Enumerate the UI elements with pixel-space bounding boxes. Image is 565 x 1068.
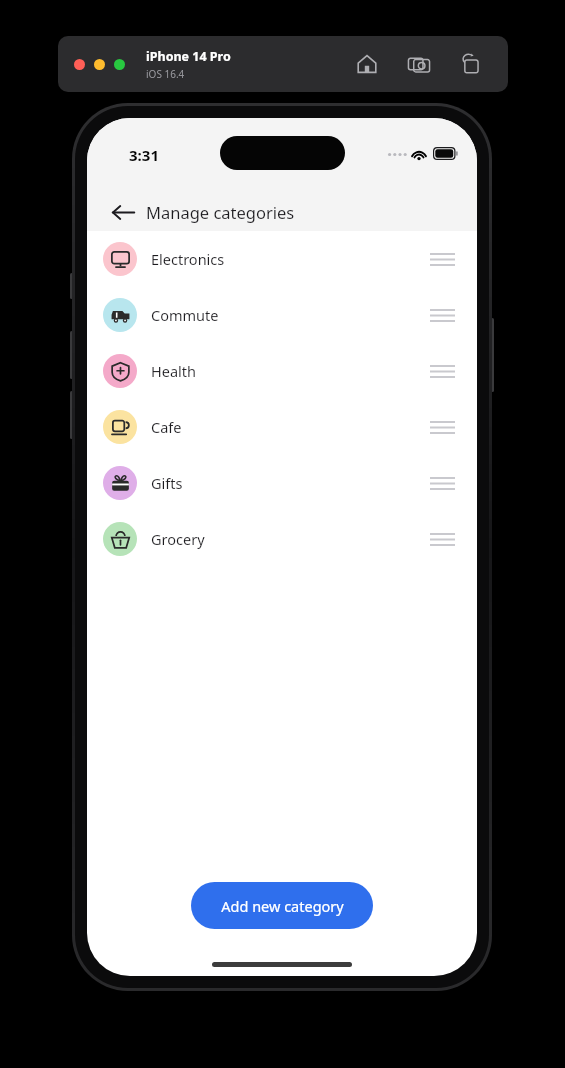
button[interactable]: Reorder Commute bbox=[427, 302, 457, 328]
staticText: iPhone 14 Pro bbox=[146, 48, 231, 65]
button[interactable]: Reorder Grocery bbox=[427, 526, 457, 552]
button[interactable]: Home bbox=[356, 53, 378, 75]
button[interactable]: Reorder Health bbox=[427, 358, 457, 384]
button[interactable]: Close bbox=[74, 59, 85, 70]
staticText: Add new category bbox=[221, 896, 344, 916]
button[interactable]: Reorder Electronics bbox=[427, 246, 457, 272]
staticText: Health bbox=[151, 361, 196, 381]
button[interactable]: Commute bbox=[87, 287, 477, 343]
staticText: Commute bbox=[151, 305, 219, 325]
button[interactable]: Cafe bbox=[87, 399, 477, 455]
button[interactable]: Minimize bbox=[94, 59, 105, 70]
button[interactable]: Gifts bbox=[87, 455, 477, 511]
button[interactable]: Rotate bbox=[460, 53, 482, 75]
button[interactable]: Grocery bbox=[87, 511, 477, 567]
button[interactable]: Add new category bbox=[191, 882, 373, 929]
button[interactable]: Reorder Gifts bbox=[427, 470, 457, 496]
staticText: Manage categories bbox=[146, 201, 295, 223]
button[interactable]: Health bbox=[87, 343, 477, 399]
button[interactable]: Screenshot bbox=[408, 53, 430, 75]
staticText: Cafe bbox=[151, 417, 182, 437]
button[interactable]: Reorder Cafe bbox=[427, 414, 457, 440]
button[interactable]: Electronics bbox=[87, 231, 477, 287]
staticText: Gifts bbox=[151, 473, 183, 493]
staticText: iOS 16.4 bbox=[146, 67, 185, 81]
staticText: Electronics bbox=[151, 249, 225, 269]
button[interactable]: Zoom bbox=[114, 59, 125, 70]
staticText: 3:31 bbox=[129, 145, 159, 165]
staticText: Grocery bbox=[151, 529, 205, 549]
button[interactable]: Back bbox=[101, 190, 145, 234]
